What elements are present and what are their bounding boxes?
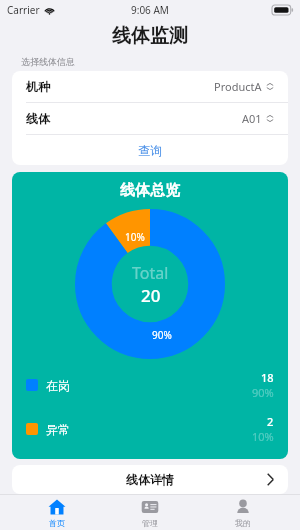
staticText: 90%: [252, 385, 274, 400]
staticText: Total: [132, 262, 169, 284]
staticText: 线体: [26, 111, 50, 126]
staticText: 异常: [46, 422, 70, 437]
staticText: 我的: [235, 518, 251, 528]
staticText: ProductA: [214, 79, 262, 94]
staticText: 9:06 AM: [131, 3, 169, 17]
other: 首页: [48, 498, 66, 516]
button[interactable]: 管理: [114, 495, 186, 530]
staticText: 线体详情: [126, 472, 174, 487]
staticText: 首页: [49, 518, 65, 528]
button[interactable]: 异常: [12, 414, 288, 444]
button[interactable]: 在岗: [12, 370, 288, 400]
button[interactable]: 机种: [12, 71, 288, 102]
staticText: 管理: [142, 518, 158, 528]
other: 我的: [234, 498, 252, 516]
staticText: 线体总览: [120, 181, 180, 200]
staticText: Carrier: [7, 3, 40, 17]
button[interactable]: 首页: [21, 495, 93, 530]
staticText: 10%: [252, 429, 274, 444]
staticText: 选择线体信息: [21, 56, 75, 67]
button[interactable]: 线体详情: [12, 465, 288, 494]
button[interactable]: 查询: [12, 135, 288, 165]
staticText: 20: [141, 284, 161, 307]
staticText: 10%: [125, 230, 145, 244]
staticText: 18: [261, 370, 274, 385]
staticText: 线体监测: [112, 24, 188, 48]
button[interactable]: 我的: [207, 495, 279, 530]
button[interactable]: 线体: [12, 103, 288, 134]
staticText: 在岗: [46, 378, 70, 393]
staticText: 2: [267, 414, 274, 429]
staticText: A01: [242, 111, 262, 126]
staticText: 机种: [26, 79, 50, 94]
other: 管理: [141, 498, 159, 516]
staticText: 查询: [138, 143, 162, 158]
staticText: 90%: [152, 328, 172, 342]
